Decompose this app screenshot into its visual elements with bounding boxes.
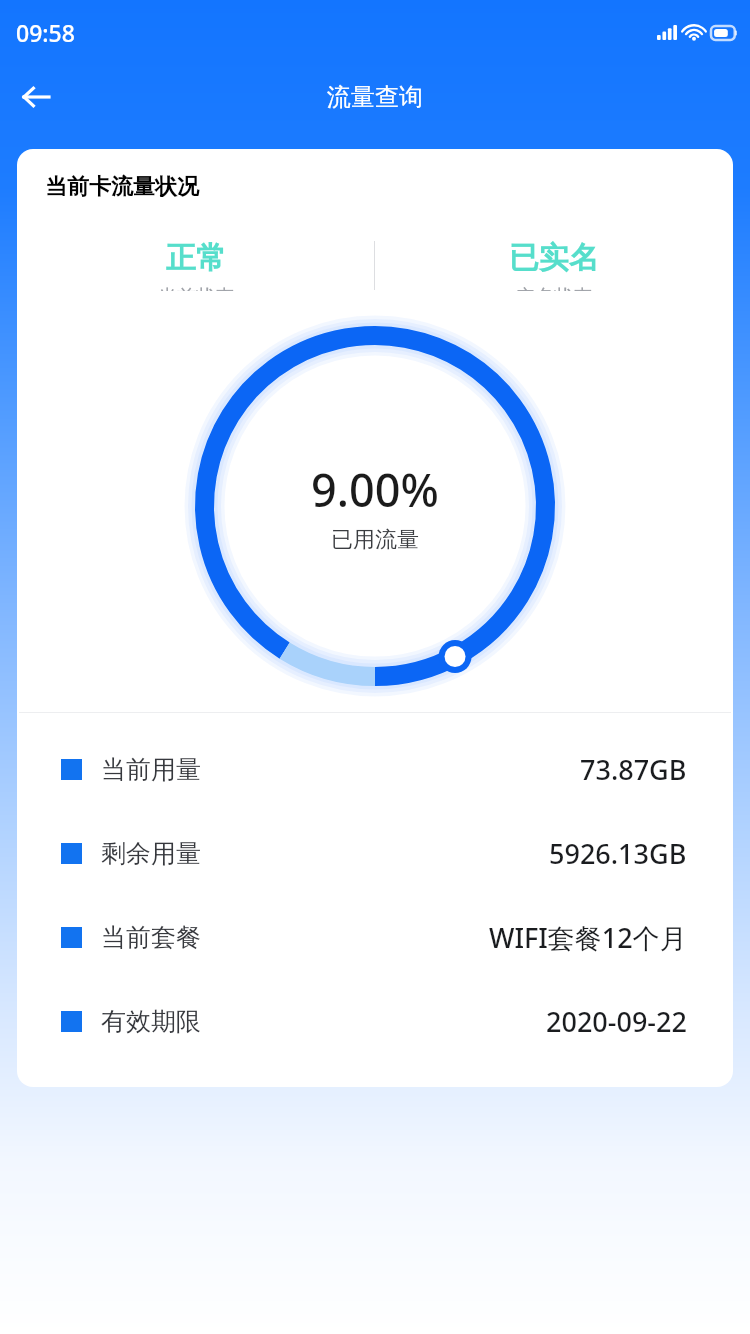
button[interactable]: 正常 — [17, 239, 374, 291]
staticText: 已实名 — [509, 239, 599, 277]
button[interactable]: 当前套餐 — [17, 895, 733, 979]
button[interactable]: 已实名 — [375, 239, 733, 291]
staticText: 2020-09-22 — [546, 1003, 687, 1040]
staticText: 73.87GB — [580, 751, 687, 788]
button[interactable]: Back — [10, 71, 62, 123]
staticText: 当前用量 — [101, 754, 201, 785]
staticText: 09:58 — [16, 17, 75, 48]
staticText: 实名状态 — [516, 285, 592, 291]
staticText: 当前套餐 — [101, 922, 201, 953]
staticText: 已用流量 — [331, 526, 419, 554]
staticText: 剩余用量 — [101, 838, 201, 869]
staticText: 当前状态 — [158, 285, 234, 291]
staticText: 流量查询 — [327, 82, 423, 112]
button[interactable]: 剩余用量 — [17, 811, 733, 895]
button[interactable]: 当前用量 — [17, 727, 733, 811]
button[interactable]: 有效期限 — [17, 979, 733, 1063]
staticText: 有效期限 — [101, 1006, 201, 1037]
staticText: 5926.13GB — [549, 835, 687, 872]
staticText: WIFI套餐12个月 — [489, 919, 687, 956]
staticText: 当前卡流量状况 — [45, 173, 199, 201]
staticText: 正常 — [166, 239, 226, 277]
staticText: 9.00% — [311, 459, 439, 520]
